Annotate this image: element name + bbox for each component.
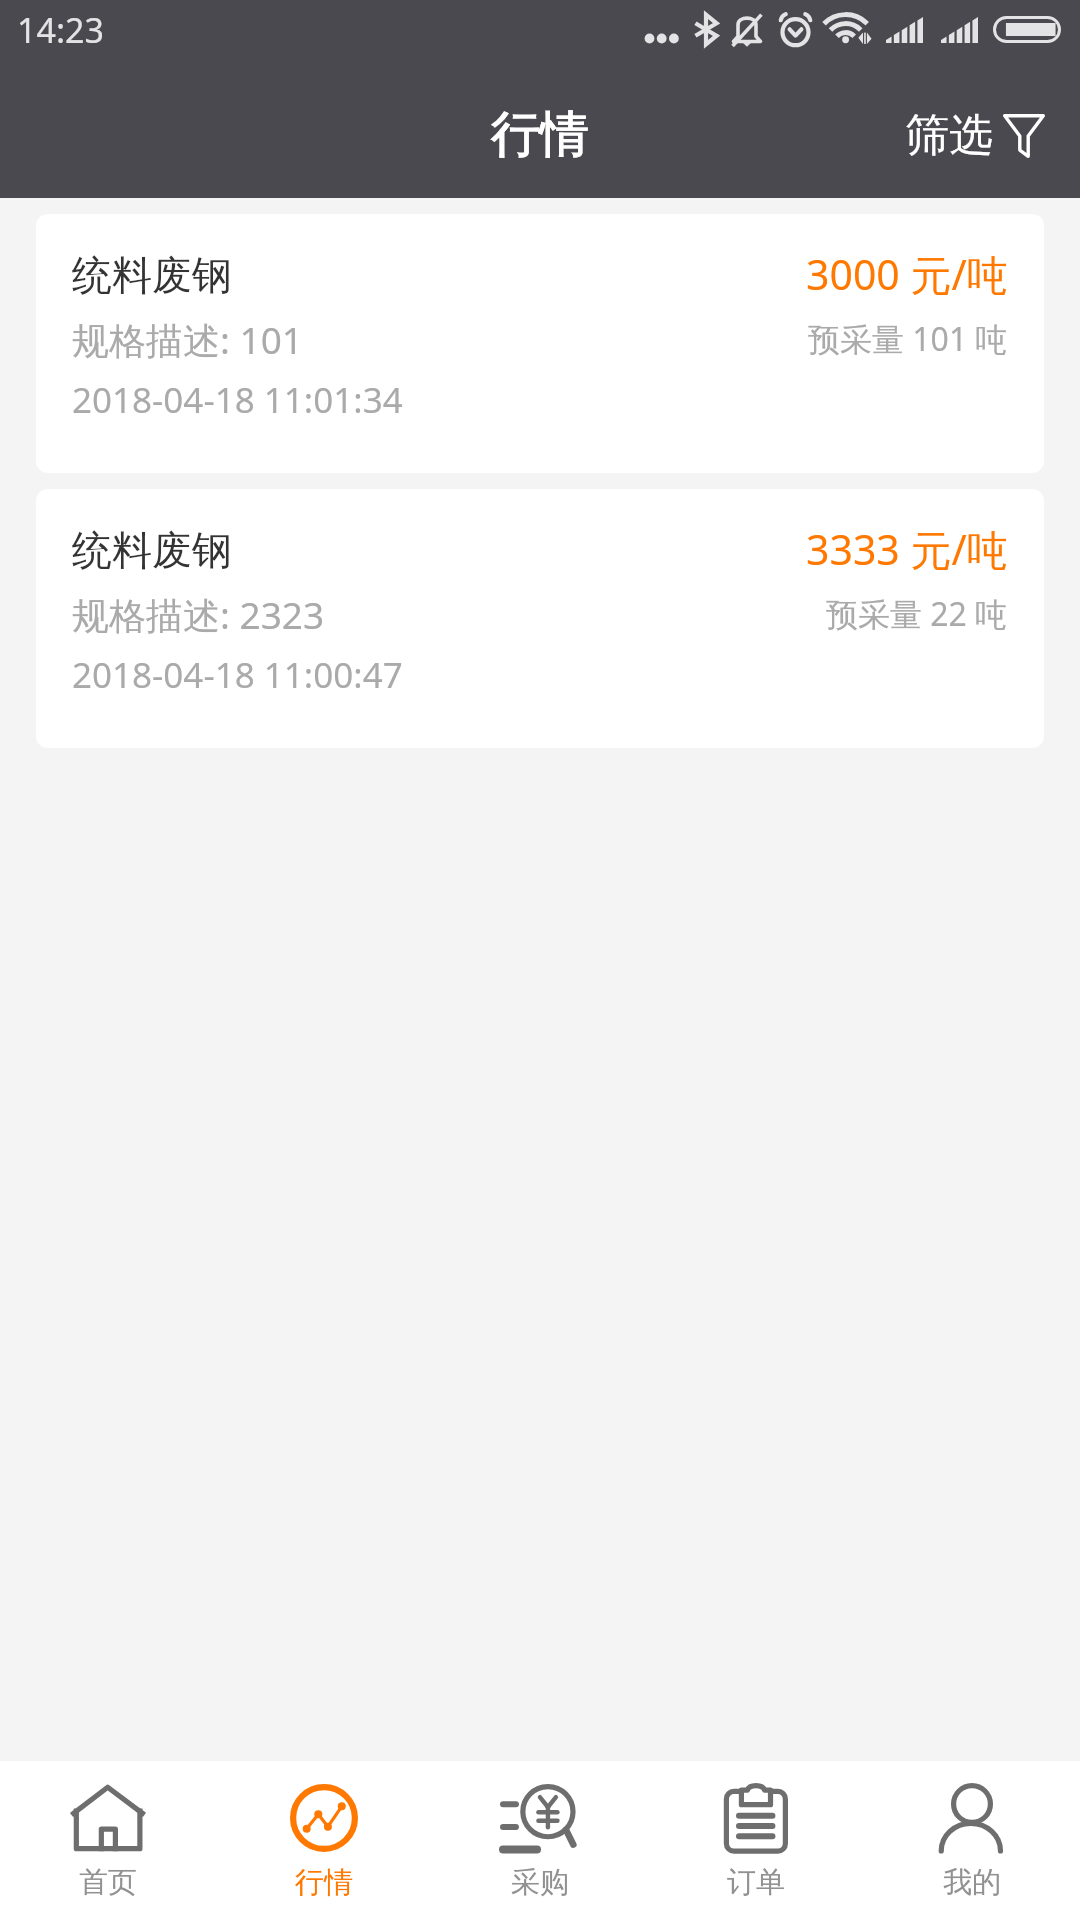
staticText: 统料废钢	[72, 250, 232, 300]
other: Filter	[1003, 114, 1045, 158]
staticText: 规格描述: 2323	[72, 589, 325, 640]
staticText: 2018-04-18 11:01:34	[72, 376, 403, 424]
button[interactable]: 首页	[0, 1761, 216, 1920]
button[interactable]: 采购	[432, 1761, 648, 1920]
button[interactable]: 订单	[648, 1761, 864, 1920]
staticText: 我的	[943, 1864, 1001, 1901]
staticText: 采购	[511, 1864, 569, 1901]
staticText: 规格描述: 101	[72, 314, 304, 365]
staticText: 预采量 22 吨	[826, 592, 1008, 636]
staticText: 3000 元/吨	[806, 246, 1008, 302]
staticText: 14:23	[17, 7, 104, 53]
staticText: 2018-04-18 11:00:47	[72, 651, 403, 699]
button[interactable]: 筛选	[881, 62, 1080, 198]
staticText: 行情	[295, 1864, 353, 1901]
staticText: 行情	[491, 104, 589, 166]
staticText: 3333 元/吨	[806, 521, 1008, 577]
button[interactable]: 统料废钢	[36, 489, 1044, 748]
staticText: 筛选	[905, 108, 993, 163]
staticText: 统料废钢	[72, 525, 232, 575]
button[interactable]: 我的	[864, 1761, 1080, 1920]
staticText: 预采量 101 吨	[808, 317, 1008, 361]
button[interactable]: 统料废钢	[36, 214, 1044, 473]
staticText: 行情	[491, 104, 589, 166]
staticText: 首页	[79, 1864, 137, 1901]
staticText: 订单	[727, 1864, 785, 1901]
button[interactable]: 行情	[216, 1761, 432, 1920]
